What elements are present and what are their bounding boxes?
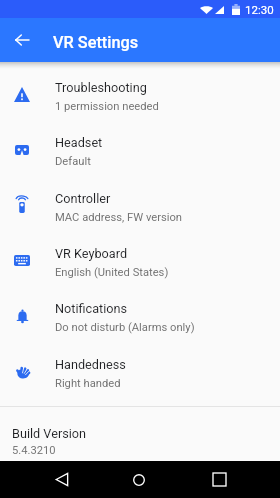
staticText: 5.4.3210 bbox=[12, 444, 56, 457]
button[interactable]: Home bbox=[121, 461, 157, 498]
staticText: Do not disturb (Alarms only) bbox=[55, 321, 195, 334]
button[interactable]: Recent apps bbox=[201, 461, 237, 498]
staticText: 1 permission needed bbox=[55, 100, 159, 113]
staticText: Controller bbox=[55, 191, 111, 206]
staticText: Handedness bbox=[55, 357, 126, 372]
staticText: Right handed bbox=[55, 377, 121, 390]
button[interactable]: Notifications bbox=[0, 290, 280, 345]
button[interactable]: Back bbox=[0, 18, 44, 62]
button[interactable]: Troubleshooting bbox=[0, 69, 280, 124]
button[interactable]: VR Keyboard bbox=[0, 235, 280, 290]
staticText: 12:30 bbox=[245, 3, 274, 16]
button[interactable]: Back bbox=[44, 461, 80, 498]
staticText: VR Keyboard bbox=[55, 246, 128, 261]
button[interactable]: Controller bbox=[0, 180, 280, 235]
staticText: Build Version bbox=[12, 426, 87, 441]
staticText: Notifications bbox=[55, 301, 128, 316]
staticText: Headset bbox=[55, 135, 103, 150]
button[interactable]: Headset bbox=[0, 124, 280, 179]
staticText: Default bbox=[55, 155, 91, 168]
button[interactable]: Handedness bbox=[0, 346, 280, 401]
staticText: Troubleshooting bbox=[55, 80, 147, 95]
staticText: English (United States) bbox=[55, 266, 169, 279]
staticText: MAC address, FW version bbox=[55, 211, 183, 224]
staticText: VR Settings bbox=[53, 33, 139, 52]
button[interactable]: Build Version bbox=[0, 407, 280, 469]
